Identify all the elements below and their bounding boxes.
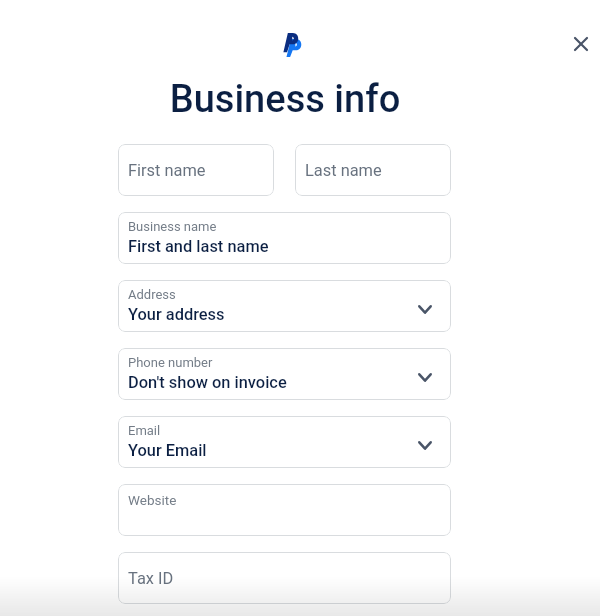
staticText: Website [128, 492, 177, 508]
staticText: Last name [305, 161, 382, 180]
staticText: Phone number [128, 355, 213, 370]
button[interactable]: Email [118, 416, 451, 468]
staticText: First and last name [128, 237, 269, 256]
button[interactable]: Close [564, 27, 598, 61]
button[interactable]: Expand Email [413, 433, 437, 457]
button[interactable]: First name [118, 144, 274, 196]
staticText: Business info [0, 77, 570, 122]
staticText: Your Email [128, 441, 207, 460]
staticText: Don't show on invoice [128, 373, 287, 392]
staticText: Tax ID [128, 569, 174, 588]
staticText: Address [128, 287, 176, 302]
button[interactable]: Business name [118, 212, 451, 264]
button[interactable]: Expand Phone number [413, 365, 437, 389]
staticText: Business name [128, 219, 217, 234]
staticText: Your address [128, 305, 225, 324]
button[interactable]: Expand Address [413, 297, 437, 321]
staticText: First name [128, 161, 206, 180]
button[interactable]: Last name [295, 144, 451, 196]
button[interactable]: Website [118, 484, 451, 536]
button[interactable]: Tax ID [118, 552, 451, 604]
button[interactable]: Address [118, 280, 451, 332]
staticText: Email [128, 423, 161, 438]
button[interactable]: Phone number [118, 348, 451, 400]
